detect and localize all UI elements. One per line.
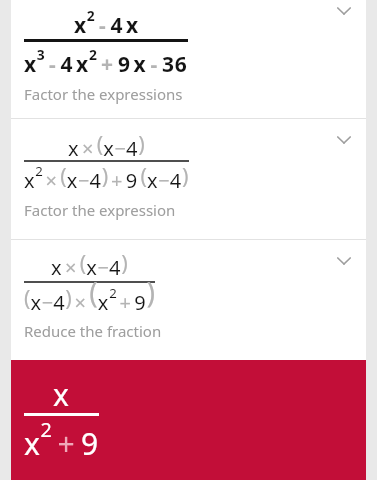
button[interactable]: x xyxy=(11,360,366,480)
button[interactable]: Expand step xyxy=(331,0,357,24)
staticText: x xyxy=(53,374,70,415)
staticText: Factor the expressions xyxy=(24,84,183,104)
button[interactable]: Expand step xyxy=(331,127,357,153)
staticText: x2 - 4 x xyxy=(74,6,139,39)
staticText: x2 × (x−4) + 9 (x−4) xyxy=(24,161,189,194)
staticText: Reduce the fraction xyxy=(24,321,162,341)
button[interactable]: Expand step xyxy=(331,248,357,274)
staticText: x × (x−4) xyxy=(51,248,128,281)
button[interactable]: x2 - 4 x xyxy=(11,0,366,118)
staticText: x2 + 9 xyxy=(24,416,99,464)
staticText: (x−4) × (x2 + 9) xyxy=(24,273,155,316)
staticText: x3 - 4 x2 + 9 x - 36 xyxy=(24,45,188,78)
button[interactable]: x × (x−4) xyxy=(11,240,366,360)
staticText: Factor the expression xyxy=(24,200,176,220)
staticText: x × (x−4) xyxy=(68,129,145,162)
button[interactable]: x × (x−4) xyxy=(11,119,366,239)
